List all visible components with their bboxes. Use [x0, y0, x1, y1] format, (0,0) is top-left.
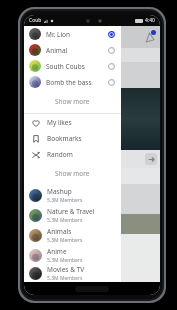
staticText: Animal — [46, 46, 108, 55]
button[interactable]: Animals — [24, 225, 121, 245]
staticText: Bomb the bass — [46, 78, 108, 87]
staticText: Nature & Travel — [47, 207, 95, 216]
button[interactable]: Animal — [24, 42, 121, 58]
button[interactable]: Show more — [24, 162, 121, 185]
staticText: Mr. Lion — [46, 30, 108, 39]
staticText: Show more — [55, 169, 90, 178]
button[interactable]: South Coubs — [24, 58, 121, 74]
button[interactable]: Notifications — [142, 30, 156, 44]
staticText: 5.3M Members — [47, 217, 83, 224]
staticText: Show more — [55, 97, 90, 106]
button[interactable]: Share — [145, 153, 157, 165]
staticText: Animals — [47, 227, 72, 236]
staticText: 5.3M Members — [47, 237, 83, 244]
staticText: 4:40 — [145, 17, 155, 24]
button[interactable]: Mashup — [24, 185, 121, 205]
staticText: Anime — [47, 247, 67, 256]
button[interactable]: Bookmarks — [24, 130, 121, 146]
button[interactable]: Anime — [24, 245, 121, 265]
button[interactable]: Nature & Travel — [24, 205, 121, 225]
button[interactable]: Random — [24, 146, 121, 162]
button[interactable]: Movies & TV — [24, 265, 121, 282]
staticText: resh — [27, 51, 40, 59]
button[interactable]: My likes — [24, 114, 121, 130]
staticText: Random — [47, 150, 73, 159]
button[interactable]: Bomb the bass — [24, 74, 121, 90]
button[interactable]: Create — [24, 258, 160, 282]
staticText: 5.3M Members — [47, 275, 83, 282]
button[interactable]: Show more — [24, 90, 121, 113]
staticText: Bookmarks — [47, 134, 82, 143]
staticText: 5.3M Members — [47, 197, 83, 204]
staticText: My likes — [47, 118, 72, 127]
button[interactable]: Mr. Lion — [24, 26, 121, 42]
staticText: South Coubs — [46, 62, 108, 71]
staticText: Mashup — [47, 187, 72, 196]
staticText: Movies & TV — [47, 265, 85, 274]
staticText: Coub — [29, 17, 42, 24]
staticText: 5.3M Members — [47, 257, 83, 264]
